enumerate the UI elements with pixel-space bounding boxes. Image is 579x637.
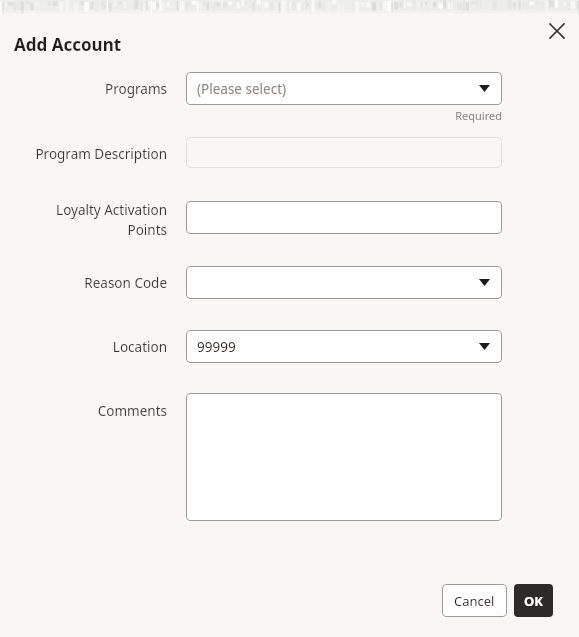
staticText: Points bbox=[0, 221, 167, 239]
staticText: Cancel bbox=[454, 592, 495, 610]
staticText: Add Account bbox=[14, 33, 122, 56]
button[interactable] bbox=[186, 137, 502, 168]
staticText: Required bbox=[342, 108, 502, 123]
button[interactable] bbox=[186, 266, 502, 299]
staticText: Loyalty Activation bbox=[0, 201, 167, 219]
staticText: Location bbox=[0, 338, 167, 356]
button[interactable]: (Please select) bbox=[186, 72, 502, 105]
button[interactable]: Cancel bbox=[442, 584, 507, 617]
button[interactable] bbox=[186, 393, 502, 521]
button[interactable] bbox=[186, 201, 502, 234]
button[interactable]: OK bbox=[514, 584, 553, 617]
staticText: Reason Code bbox=[0, 274, 167, 292]
staticText: OK bbox=[524, 592, 543, 610]
button[interactable]: Close bbox=[543, 17, 571, 45]
staticText: Programs bbox=[0, 80, 167, 98]
staticText: Program Description bbox=[0, 145, 167, 163]
staticText: (Please select) bbox=[197, 80, 287, 98]
button[interactable]: 99999 bbox=[186, 330, 502, 363]
staticText: Comments bbox=[0, 402, 167, 420]
staticText: 99999 bbox=[197, 338, 236, 356]
